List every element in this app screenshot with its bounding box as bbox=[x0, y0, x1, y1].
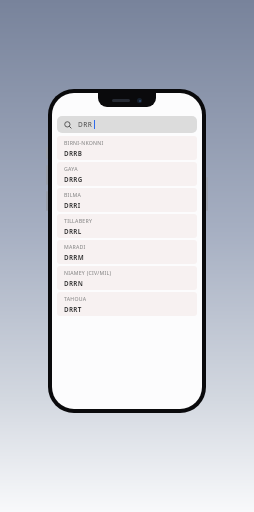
staticText: DRR bbox=[78, 120, 93, 129]
staticText: BIRNI-NKONNI bbox=[64, 139, 104, 146]
button[interactable]: TILLABERY bbox=[57, 214, 197, 238]
staticText: BILMA bbox=[64, 191, 82, 198]
button[interactable]: NIAMEY (CIV/MIL) bbox=[57, 266, 197, 290]
button[interactable]: DRR bbox=[57, 116, 197, 133]
staticText: DRRL bbox=[64, 227, 82, 236]
staticText: TAHOUA bbox=[64, 295, 87, 302]
staticText: DRRT bbox=[64, 305, 82, 314]
button[interactable]: BILMA bbox=[57, 188, 197, 212]
staticText: GAYA bbox=[64, 165, 78, 172]
staticText: DRRI bbox=[64, 201, 81, 210]
staticText: MARADI bbox=[64, 243, 86, 250]
button[interactable]: BIRNI-NKONNI bbox=[57, 136, 197, 160]
button[interactable]: TAHOUA bbox=[57, 292, 197, 316]
staticText: NIAMEY (CIV/MIL) bbox=[64, 269, 112, 276]
staticText: DRRB bbox=[64, 149, 83, 158]
staticText: DRRN bbox=[64, 279, 84, 288]
button[interactable]: MARADI bbox=[57, 240, 197, 264]
staticText: DRRG bbox=[64, 175, 83, 184]
staticText: TILLABERY bbox=[64, 217, 93, 224]
button[interactable]: GAYA bbox=[57, 162, 197, 186]
staticText: DRRM bbox=[64, 253, 85, 262]
